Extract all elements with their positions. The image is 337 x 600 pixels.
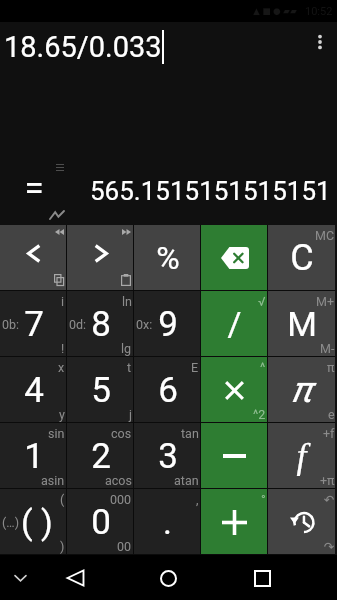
button[interactable]: Recents (240, 556, 284, 600)
staticText: 5 (91, 370, 111, 411)
button[interactable]: Move cursor right (67, 225, 134, 291)
staticText: 565.1515151515151 (90, 176, 331, 206)
staticText: 18.65/0.033 (4, 30, 162, 64)
staticText: ln (122, 294, 132, 309)
staticText: ^2 (253, 407, 266, 422)
staticText: 8 (91, 304, 111, 345)
staticText: ° (261, 492, 266, 507)
staticText: y (59, 407, 65, 422)
button[interactable]: Functions (268, 423, 335, 489)
staticText: tan (181, 426, 199, 441)
staticText: x (58, 360, 65, 375)
staticText: 4 (24, 370, 44, 411)
staticText: = (24, 168, 44, 209)
button[interactable]: More options (303, 25, 337, 59)
staticText: % (156, 239, 180, 277)
staticText: ) (60, 539, 65, 554)
staticText: ^ (260, 360, 266, 375)
staticText: C (290, 237, 314, 279)
staticText: / (227, 304, 242, 344)
staticText: ↶ (324, 492, 335, 507)
button[interactable]: 3 (134, 423, 201, 489)
button[interactable]: Hide keyboard (0, 555, 40, 600)
staticText: π (327, 360, 335, 375)
staticText: lg (121, 341, 132, 356)
button[interactable]: 7 (0, 291, 67, 357)
button[interactable]: 9 (134, 291, 201, 357)
button[interactable]: Pi (268, 357, 335, 423)
staticText: atan (174, 473, 199, 488)
button[interactable]: 5 (67, 357, 134, 423)
staticText: √ (258, 294, 266, 309)
button[interactable]: 8 (67, 291, 134, 357)
staticText: (…) (2, 515, 19, 530)
button[interactable]: Plus (201, 489, 268, 555)
staticText: π (291, 369, 312, 411)
button[interactable]: 6 (134, 357, 201, 423)
staticText: 1 (24, 436, 44, 477)
staticText: MC (315, 228, 335, 243)
staticText: 7 (24, 304, 44, 345)
button[interactable]: 0 (67, 489, 134, 555)
staticText: . (163, 502, 172, 542)
button[interactable]: 2 (67, 423, 134, 489)
button[interactable]: Clear (268, 225, 335, 291)
staticText: 0b: (2, 317, 20, 332)
staticText: 0x: (136, 317, 153, 332)
button[interactable]: Decimal point (134, 489, 201, 555)
staticText: M+ (316, 294, 335, 309)
button[interactable]: 1 (0, 423, 67, 489)
staticText: 10:52 (305, 5, 333, 18)
staticText: 9 (158, 304, 178, 345)
staticText: M- (320, 341, 335, 356)
staticText: ! (61, 341, 65, 356)
staticText: E (191, 360, 199, 375)
staticText: 0 (91, 502, 111, 543)
staticText: ↷ (324, 539, 335, 554)
staticText: asin (41, 473, 65, 488)
button[interactable]: Backspace (201, 225, 268, 291)
staticText: cos (111, 426, 132, 441)
staticText: t (127, 360, 132, 375)
staticText: i (61, 294, 65, 309)
button[interactable]: History (268, 489, 335, 555)
button[interactable]: Memory (268, 291, 335, 357)
staticText: ▲ ■ ● ▰▰ (253, 6, 297, 17)
button[interactable]: Equals (0, 152, 67, 225)
staticText: +f (323, 426, 335, 441)
staticText: ( ) (21, 502, 53, 542)
staticText: 3 (158, 436, 178, 477)
staticText: j (129, 407, 132, 422)
staticText: ( (60, 492, 65, 507)
staticText: sin (48, 426, 65, 441)
staticText: f (296, 436, 307, 476)
button[interactable]: 4 (0, 357, 67, 423)
button[interactable]: Back (53, 556, 97, 600)
button[interactable]: Multiply (201, 357, 268, 423)
staticText: e (328, 407, 335, 422)
staticText: M (287, 304, 317, 344)
staticText: 6 (158, 370, 178, 411)
staticText: , (196, 492, 199, 507)
button[interactable]: Percent (134, 225, 201, 291)
staticText: +π (320, 473, 335, 488)
staticText: 2 (91, 436, 111, 477)
button[interactable]: Home (146, 556, 190, 600)
staticText: 00 (117, 539, 132, 554)
staticText: acos (105, 473, 132, 488)
staticText: 0d: (69, 317, 87, 332)
button[interactable]: Divide (201, 291, 268, 357)
button[interactable]: Minus (201, 423, 268, 489)
staticText: 000 (110, 492, 132, 507)
button[interactable]: Move cursor left (0, 225, 67, 291)
button[interactable]: Parentheses (0, 489, 67, 555)
